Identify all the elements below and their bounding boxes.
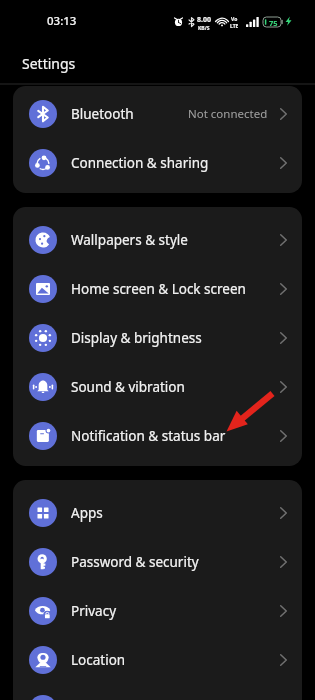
staticText: 8.00 (197, 15, 211, 25)
staticText: Home screen & Lock screen (71, 280, 246, 298)
staticText: Connection & sharing (71, 154, 209, 172)
staticText: Bluetooth (71, 105, 134, 123)
button[interactable]: Bluetooth (13, 89, 302, 138)
button[interactable]: Password & security (13, 537, 302, 586)
staticText: Notification & status bar (71, 427, 226, 445)
button[interactable]: Apps (13, 488, 302, 537)
staticText: Display & brightness (71, 329, 202, 347)
staticText: Not connected (188, 106, 268, 122)
button[interactable] (13, 684, 302, 700)
staticText: Wallpapers & style (71, 231, 188, 249)
staticText: Password & security (71, 553, 199, 571)
button[interactable]: Home screen & Lock screen (13, 264, 302, 313)
button[interactable]: Wallpapers & style (13, 215, 302, 264)
staticText: 03:13 (47, 13, 77, 29)
staticText: Settings (22, 54, 76, 73)
button[interactable]: Sound & vibration (13, 362, 302, 411)
button[interactable]: Location (13, 635, 302, 684)
button[interactable]: Display & brightness (13, 313, 302, 362)
staticText: Location (71, 651, 126, 669)
staticText: Sound & vibration (71, 378, 185, 396)
button[interactable]: Privacy (13, 586, 302, 635)
staticText: Vo (231, 16, 238, 23)
button[interactable]: Notification & status bar (13, 411, 302, 460)
staticText: LTE (230, 23, 239, 30)
staticText: Privacy (71, 602, 117, 620)
staticText: 75 (269, 18, 278, 28)
staticText: Apps (71, 504, 103, 522)
button[interactable]: Connection & sharing (13, 138, 302, 187)
staticText: KB/S (198, 25, 210, 32)
